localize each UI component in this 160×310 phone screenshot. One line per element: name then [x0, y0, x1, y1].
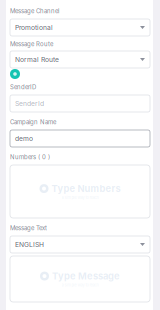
staticText: Promotional: [15, 23, 53, 32]
staticText: a simple way to reach: [61, 195, 98, 200]
button[interactable]: Type Numbers: [10, 165, 150, 218]
staticText: ENGLISH: [15, 240, 44, 249]
staticText: Message Text: [10, 224, 47, 232]
staticText: Normal Route: [15, 55, 59, 64]
button[interactable]: ENGLISH: [10, 236, 150, 253]
button[interactable]: Route status: [10, 69, 20, 79]
staticText: SenderID: [10, 83, 36, 91]
staticText: Numbers ( 0 ): [10, 153, 50, 161]
button[interactable]: Normal Route: [10, 51, 150, 68]
staticText: Type Numbers: [51, 183, 120, 194]
staticText: Message Route: [10, 40, 53, 48]
button[interactable]: Type Message: [10, 256, 150, 302]
button[interactable]: demo: [10, 130, 150, 147]
staticText: Message Channel: [10, 7, 59, 15]
staticText: demo: [15, 134, 33, 143]
button[interactable]: Promotional: [10, 19, 150, 36]
button[interactable]: SenderId: [10, 95, 150, 112]
staticText: Type Message: [52, 270, 120, 282]
staticText: SenderId: [15, 99, 44, 108]
staticText: Campaign Name: [10, 118, 56, 126]
